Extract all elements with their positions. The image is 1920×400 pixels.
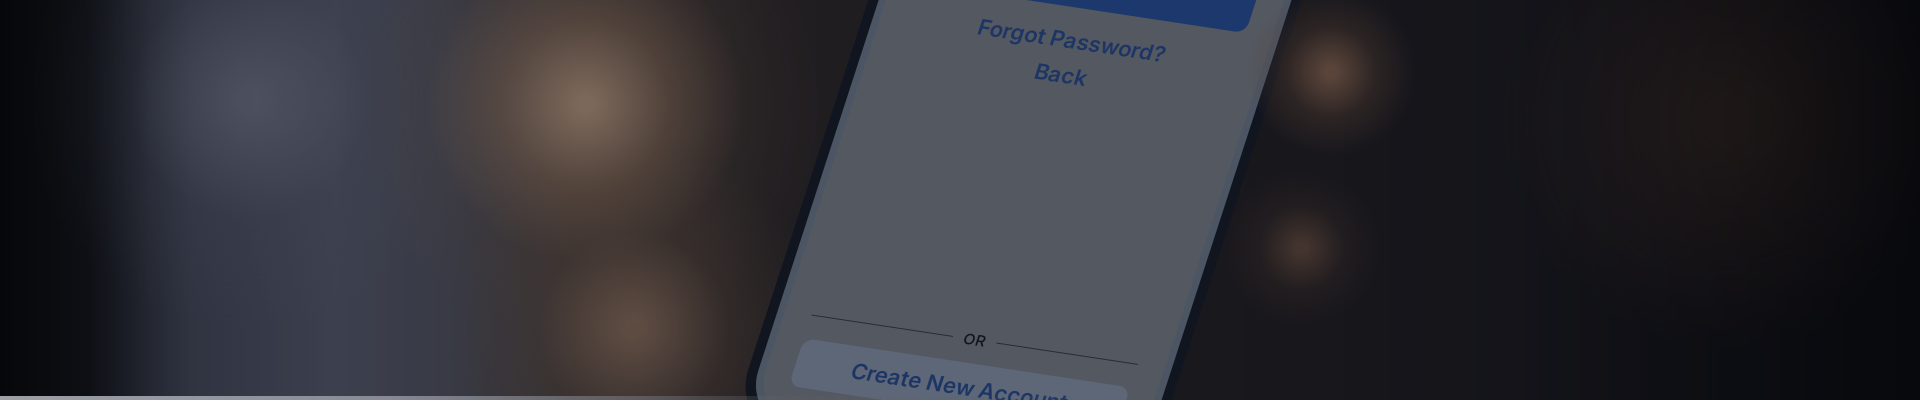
staticText: Create New Account [1100, 378, 1318, 400]
button[interactable]: Create New Account [1044, 366, 1374, 400]
button[interactable]: Forgot Password? [1044, 15, 1374, 39]
staticText: Forgot Password? [1114, 14, 1303, 40]
button[interactable]: Back [1044, 51, 1374, 75]
